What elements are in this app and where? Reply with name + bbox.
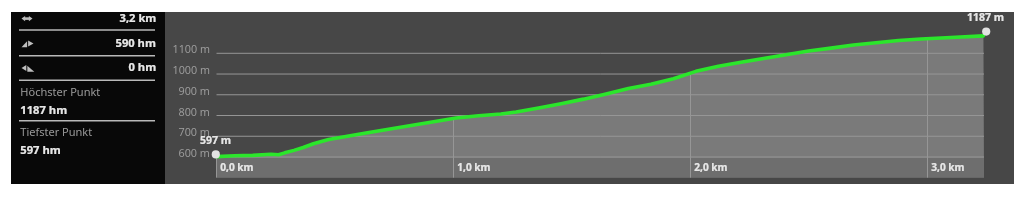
- button[interactable]: Elevation profile chart: [0, 0, 1024, 197]
